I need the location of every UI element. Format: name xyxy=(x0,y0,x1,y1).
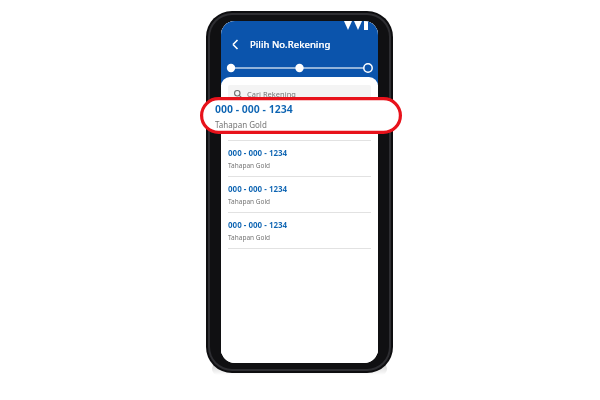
staticText: Cari Rekening xyxy=(247,89,296,99)
staticText: Pilih No.Rekening xyxy=(250,38,331,51)
button[interactable]: 000 - 000 - 1234 xyxy=(215,102,417,130)
staticText: 000 - 000 - 1234 xyxy=(228,111,288,122)
staticText: 000 - 000 - 1234 xyxy=(228,183,288,194)
staticText: Tahapan Gold xyxy=(228,197,378,206)
button[interactable]: Cari Rekening xyxy=(228,85,371,102)
button[interactable]: 000 - 000 - 1234 xyxy=(221,177,378,212)
button[interactable]: Back xyxy=(226,35,244,53)
button[interactable]: 000 - 000 - 1234 xyxy=(221,141,378,176)
button[interactable]: 000 - 000 - 1234 xyxy=(221,105,378,140)
staticText: 000 - 000 - 1234 xyxy=(228,147,288,158)
button[interactable]: 000 - 000 - 1234 xyxy=(221,213,378,248)
staticText: Tahapan Gold xyxy=(228,125,378,134)
staticText: Tahapan Gold xyxy=(228,233,378,242)
staticText: 000 - 000 - 1234 xyxy=(228,219,288,230)
staticText: 000 - 000 - 1234 xyxy=(215,102,293,116)
staticText: Tahapan Gold xyxy=(228,161,378,170)
staticText: Tahapan Gold xyxy=(215,119,267,130)
